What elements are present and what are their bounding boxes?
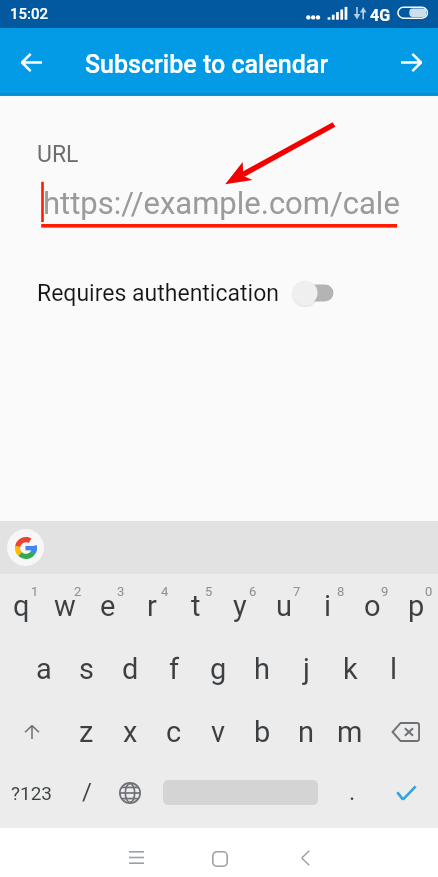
staticText: r: [147, 589, 157, 623]
staticText: l: [390, 652, 398, 686]
button[interactable]: l: [372, 637, 416, 700]
staticText: 4G: [370, 6, 391, 25]
staticText: Requires authentication: [37, 280, 279, 307]
button[interactable]: Google search: [7, 529, 44, 566]
button[interactable]: x: [108, 700, 152, 763]
staticText: 4: [161, 584, 169, 599]
staticText: c: [166, 715, 182, 749]
staticText: 9: [381, 584, 389, 599]
staticText: ?123: [11, 782, 53, 804]
staticText: a: [36, 652, 52, 686]
staticText: d: [122, 652, 139, 686]
staticText: p: [408, 589, 425, 623]
staticText: g: [210, 652, 227, 686]
staticText: u: [276, 589, 292, 623]
button[interactable]: s: [65, 637, 108, 700]
button[interactable]: f: [152, 637, 196, 700]
staticText: y: [233, 589, 247, 623]
button[interactable]: Back: [279, 833, 331, 877]
staticText: k: [343, 652, 358, 686]
button[interactable]: 7: [262, 574, 306, 637]
button[interactable]: j: [284, 637, 328, 700]
button[interactable]: 2: [43, 574, 86, 637]
button[interactable]: Backspace: [372, 700, 438, 763]
button[interactable]: Recent apps: [110, 833, 162, 877]
staticText: i: [324, 589, 332, 623]
staticText: b: [254, 715, 271, 749]
button[interactable]: m: [328, 700, 372, 763]
button[interactable]: z: [64, 700, 108, 763]
button[interactable]: Next: [387, 28, 435, 96]
button[interactable]: ?123: [0, 763, 64, 828]
button[interactable]: c: [152, 700, 196, 763]
staticText: e: [100, 589, 116, 623]
button[interactable]: k: [328, 637, 372, 700]
staticText: w: [54, 589, 76, 623]
staticText: 3: [117, 584, 125, 599]
button[interactable]: n: [284, 700, 328, 763]
staticText: 7: [293, 584, 301, 599]
button[interactable]: Enter: [374, 763, 438, 828]
button[interactable]: 3: [86, 574, 130, 637]
staticText: 2: [74, 584, 82, 599]
staticText: 0: [425, 584, 433, 599]
staticText: m: [337, 715, 363, 749]
staticText: q: [13, 589, 30, 623]
staticText: s: [79, 652, 94, 686]
staticText: 8: [337, 584, 345, 599]
staticText: f: [169, 652, 180, 686]
button[interactable]: Change language: [109, 763, 151, 828]
button[interactable]: b: [240, 700, 284, 763]
button[interactable]: 5: [174, 574, 218, 637]
button[interactable]: 6: [218, 574, 262, 637]
staticText: o: [364, 589, 381, 623]
button[interactable]: 0: [394, 574, 438, 637]
staticText: https://example.com/cale: [43, 185, 400, 221]
staticText: 5: [205, 584, 213, 599]
staticText: /: [82, 778, 92, 806]
button[interactable]: 4: [130, 574, 174, 637]
staticText: v: [211, 715, 226, 749]
button[interactable]: a: [22, 637, 65, 700]
staticText: Subscribe to calendar: [85, 50, 329, 79]
button[interactable]: h: [240, 637, 284, 700]
staticText: 15:02: [10, 5, 49, 23]
button[interactable]: Shift: [0, 700, 64, 763]
button[interactable]: 9: [350, 574, 394, 637]
staticText: 1: [31, 584, 39, 599]
button[interactable]: 8: [306, 574, 350, 637]
staticText: .: [349, 778, 356, 806]
staticText: j: [303, 652, 310, 686]
staticText: 6: [249, 584, 257, 599]
staticText: URL: [37, 141, 79, 168]
staticText: h: [254, 652, 270, 686]
button[interactable]: Home: [194, 834, 246, 877]
button[interactable]: Requires authentication: [30, 269, 348, 317]
staticText: t: [191, 589, 201, 623]
button[interactable]: d: [108, 637, 152, 700]
button[interactable]: /: [64, 763, 109, 828]
staticText: n: [298, 715, 315, 749]
button[interactable]: 1: [0, 574, 43, 637]
button[interactable]: .: [330, 763, 374, 828]
button[interactable]: v: [196, 700, 240, 763]
button[interactable]: Space: [151, 763, 330, 828]
staticText: z: [79, 715, 94, 749]
button[interactable]: Back: [7, 28, 55, 96]
button[interactable]: g: [196, 637, 240, 700]
staticText: x: [123, 715, 138, 749]
